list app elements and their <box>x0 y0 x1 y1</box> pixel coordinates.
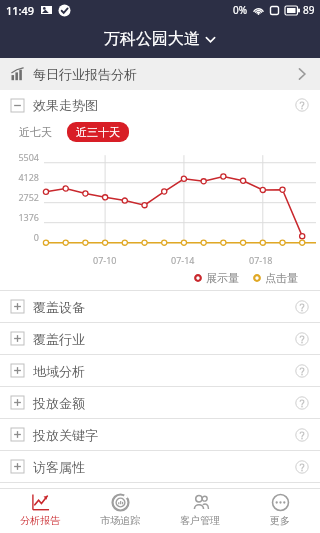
button[interactable]: 效果走势图 <box>0 90 320 120</box>
staticText: 投放金额 <box>33 395 85 411</box>
button[interactable]: 每日行业报告分析 <box>0 58 320 90</box>
button[interactable]: 覆盖设备 <box>0 291 320 322</box>
staticText: 07-18 <box>249 254 273 266</box>
staticText: 0% <box>233 3 248 17</box>
staticText: 2752 <box>0 191 39 203</box>
button[interactable]: 客户管理 <box>160 489 240 533</box>
staticText: 1376 <box>0 211 39 223</box>
staticText: 11:49 <box>6 3 35 18</box>
button[interactable]: 更多 <box>240 489 320 533</box>
staticText: 分析报告 <box>20 514 60 527</box>
other: Help <box>295 364 309 378</box>
staticText: 万科公园大道 <box>104 29 200 49</box>
staticText: 展示量 <box>206 271 239 285</box>
staticText: 更多 <box>270 514 290 527</box>
staticText: 近三十天 <box>76 125 120 139</box>
other: Help <box>295 332 309 346</box>
button[interactable]: 投放关键字 <box>0 419 320 450</box>
staticText: 4128 <box>0 171 39 183</box>
button[interactable]: 市场追踪 <box>80 489 160 533</box>
staticText: 市场追踪 <box>100 514 140 527</box>
other: Help <box>295 396 309 410</box>
staticText: 点击量 <box>265 271 298 285</box>
button[interactable]: 近三十天 <box>67 122 129 142</box>
staticText: 地域分析 <box>33 363 85 379</box>
button[interactable]: 投放金额 <box>0 387 320 418</box>
other: Help <box>295 428 309 442</box>
staticText: 近七天 <box>19 125 52 139</box>
staticText: 07-10 <box>93 254 117 266</box>
button[interactable]: 覆盖行业 <box>0 323 320 354</box>
other: Help <box>295 98 309 112</box>
staticText: 覆盖行业 <box>33 331 85 347</box>
staticText: 每日行业报告分析 <box>33 66 137 82</box>
staticText: 07-14 <box>171 254 195 266</box>
staticText: 效果走势图 <box>33 97 98 113</box>
button[interactable]: 分析报告 <box>0 489 80 533</box>
other: Help <box>295 300 309 314</box>
staticText: 89 <box>303 3 315 17</box>
button[interactable]: 访客属性 <box>0 451 320 482</box>
staticText: 访客属性 <box>33 459 85 475</box>
button[interactable]: 地域分析 <box>0 355 320 386</box>
button[interactable]: 近七天 <box>14 122 57 142</box>
other: Help <box>295 460 309 474</box>
staticText: 覆盖设备 <box>33 299 85 315</box>
staticText: 5504 <box>0 151 39 163</box>
staticText: 客户管理 <box>180 514 220 527</box>
staticText: 投放关键字 <box>33 427 98 443</box>
button[interactable]: 万科公园大道 <box>0 20 320 58</box>
staticText: 0 <box>0 231 39 243</box>
